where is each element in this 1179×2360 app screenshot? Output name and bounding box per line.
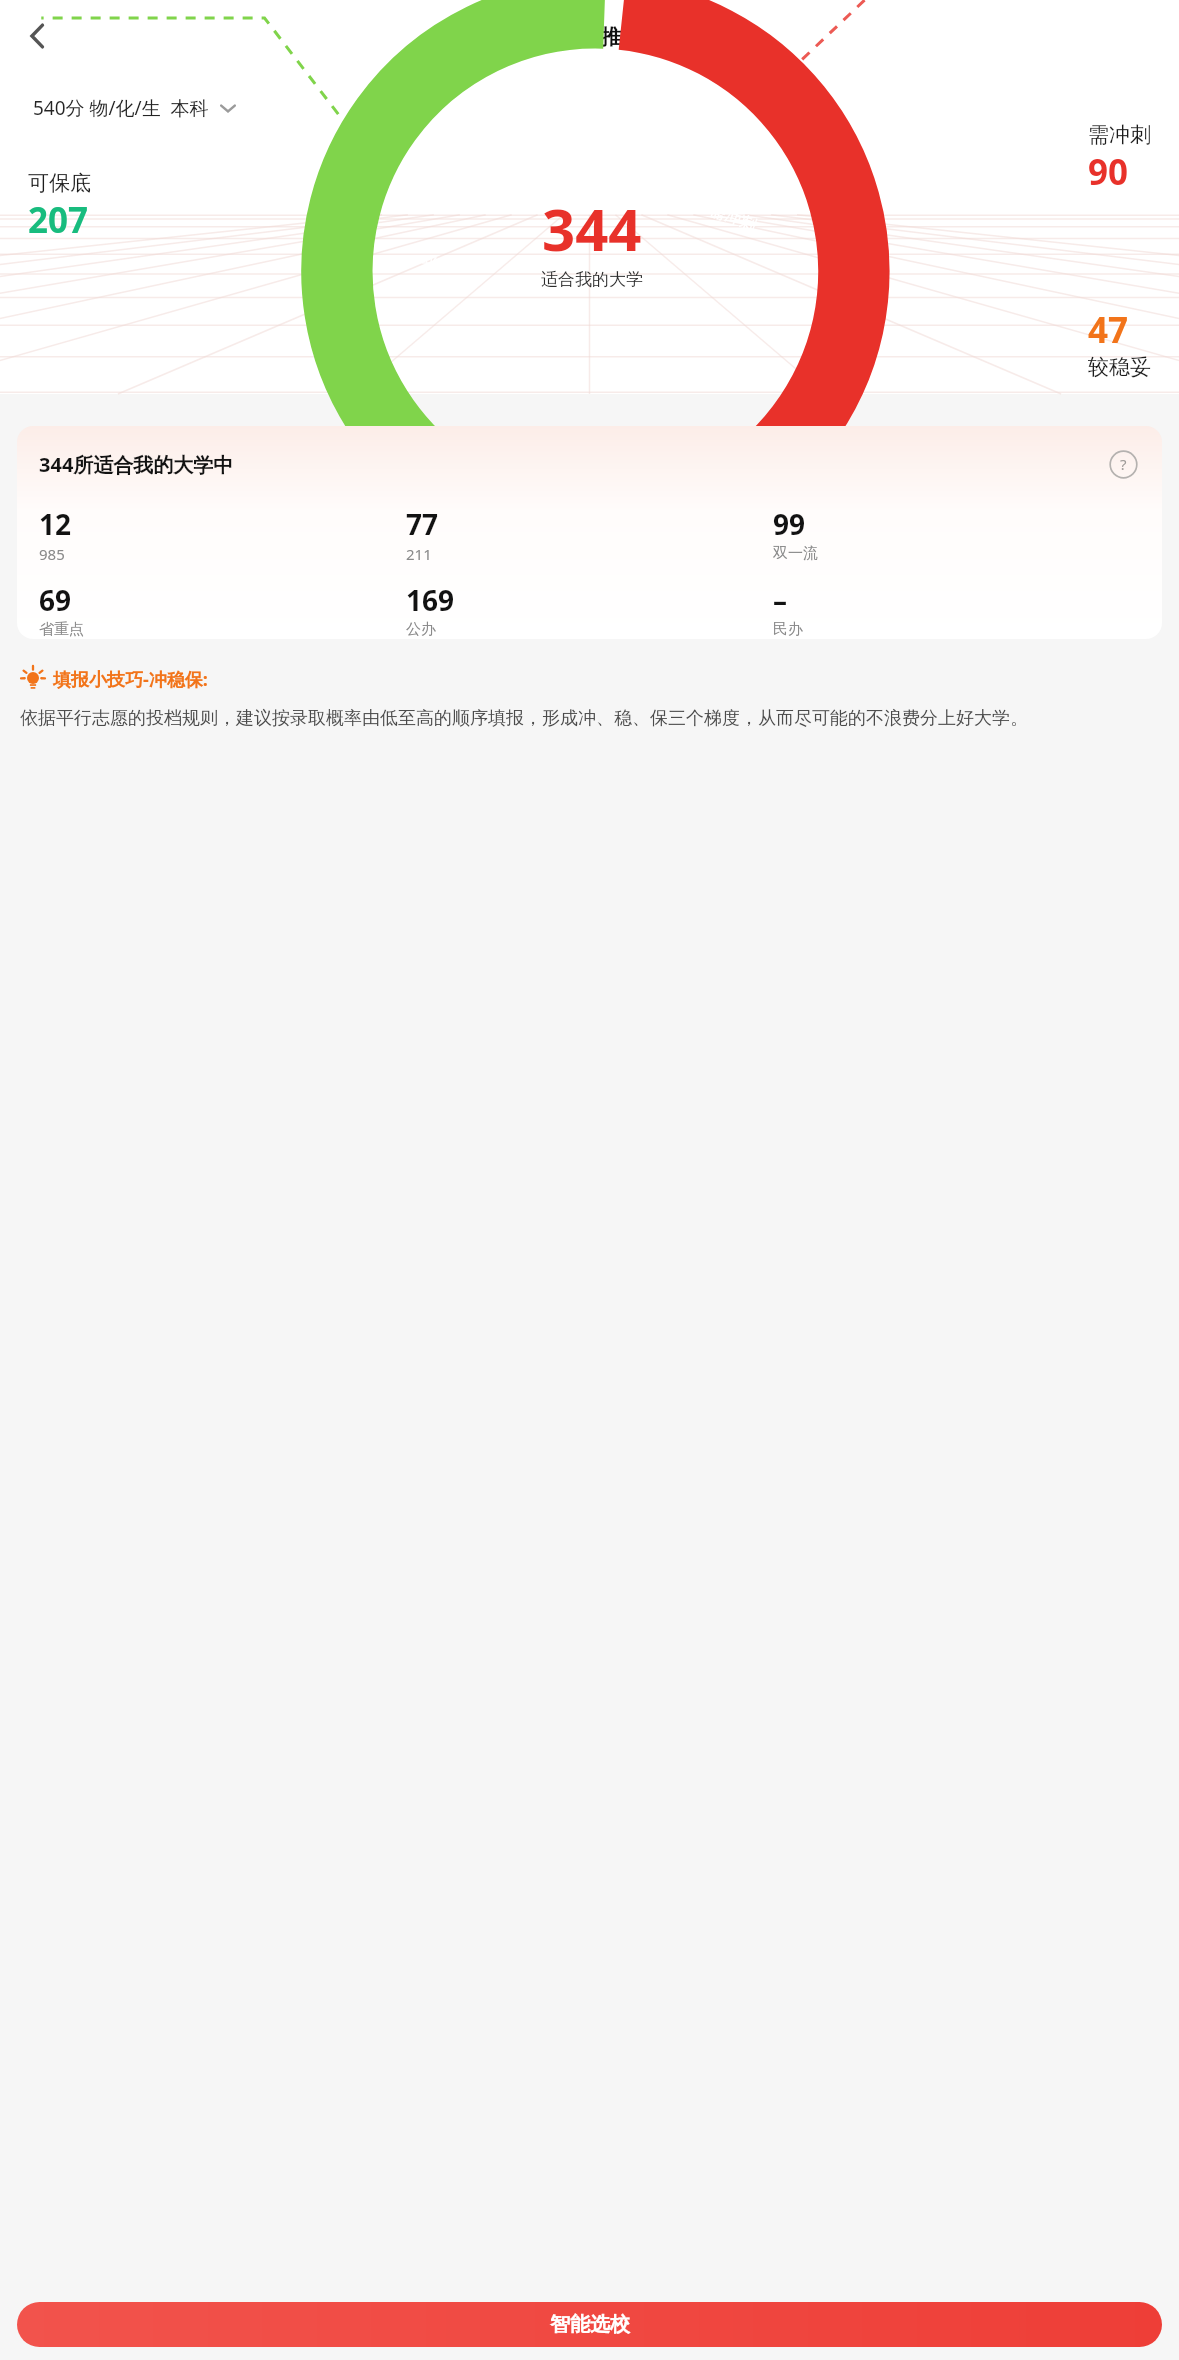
staticText: 207 [28,196,89,244]
button[interactable]: 540分 物/化/生 本科 [31,90,240,126]
staticText: 540分 物/化/生 本科 [33,95,209,121]
staticText: 需冲刺 [1088,122,1151,148]
staticText: 民办 [773,620,803,639]
staticText: AI智能推荐 [536,22,643,51]
staticText: 344 [542,189,642,268]
staticText: 90 [1088,148,1129,196]
staticText: 可保底 [420,253,469,275]
staticText: 双一流 [773,544,818,563]
staticText: 211 [406,544,432,564]
staticText: 依据平行志愿的投档规则，建议按录取概率由低至高的顺序填报，形成冲、稳、保三个梯度… [20,707,1028,730]
staticText: – [773,581,788,619]
staticText: 69 [39,581,72,619]
staticText: 公办 [406,620,436,639]
staticText: 适合我的大学 [541,269,643,290]
button[interactable]: 智能选校 [17,2302,1162,2347]
staticText: 省重点 [39,620,84,639]
staticText: 985 [39,544,65,564]
staticText: ? [1120,454,1127,474]
staticText: 47 [1088,306,1129,354]
staticText: 77 [406,505,439,543]
staticText: 较稳妥 [1088,354,1151,380]
staticText: 可保底 [28,170,91,196]
staticText: 需冲刺 [707,200,759,236]
staticText: 169 [406,581,455,619]
staticText: 填报小技巧-冲稳保: [53,667,208,692]
staticText: 较稳妥 [659,356,711,392]
button[interactable]: Back [10,8,66,64]
button[interactable]: Help [1106,447,1140,481]
staticText: 344所适合我的大学中 [39,451,234,478]
staticText: 12 [39,505,72,543]
staticText: 智能选校 [550,2312,630,2337]
staticText: 99 [773,505,806,543]
